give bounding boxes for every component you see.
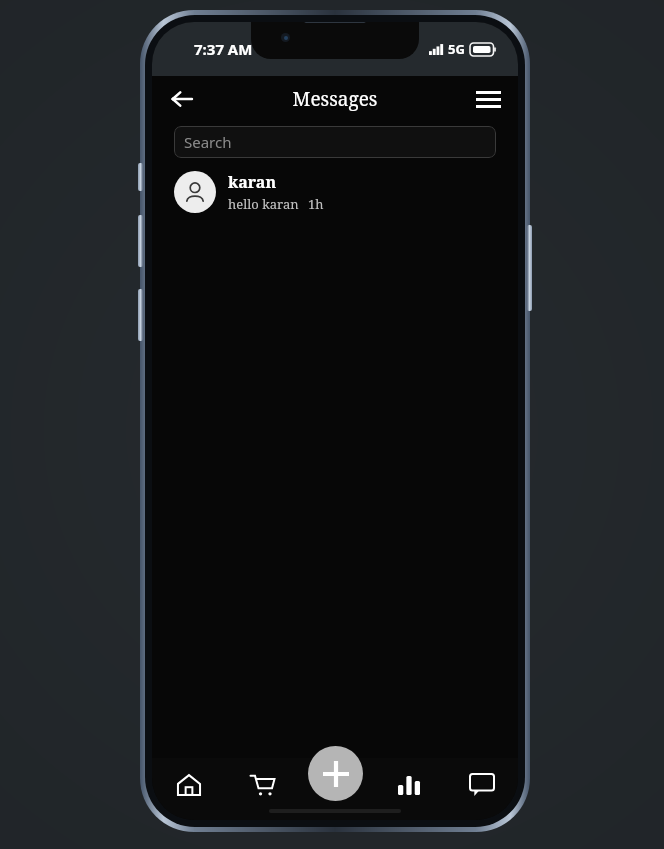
button[interactable]: Menu xyxy=(468,79,508,119)
button[interactable]: Add xyxy=(308,746,363,801)
staticText: 1h xyxy=(308,195,324,213)
staticText: 7:37 AM xyxy=(194,39,253,59)
button[interactable]: Messages xyxy=(445,762,518,808)
button[interactable]: Cart xyxy=(226,762,299,808)
button[interactable]: Home xyxy=(152,762,226,808)
button[interactable]: Back xyxy=(162,79,202,119)
staticText: 5G xyxy=(448,40,465,58)
staticText: hello karan xyxy=(228,195,299,213)
button[interactable]: Stats xyxy=(372,762,445,808)
staticText: karan xyxy=(228,171,277,193)
button[interactable]: Search xyxy=(174,126,496,158)
staticText: Messages xyxy=(152,86,518,112)
button[interactable]: karan xyxy=(152,162,518,222)
staticText: Search xyxy=(184,132,232,152)
